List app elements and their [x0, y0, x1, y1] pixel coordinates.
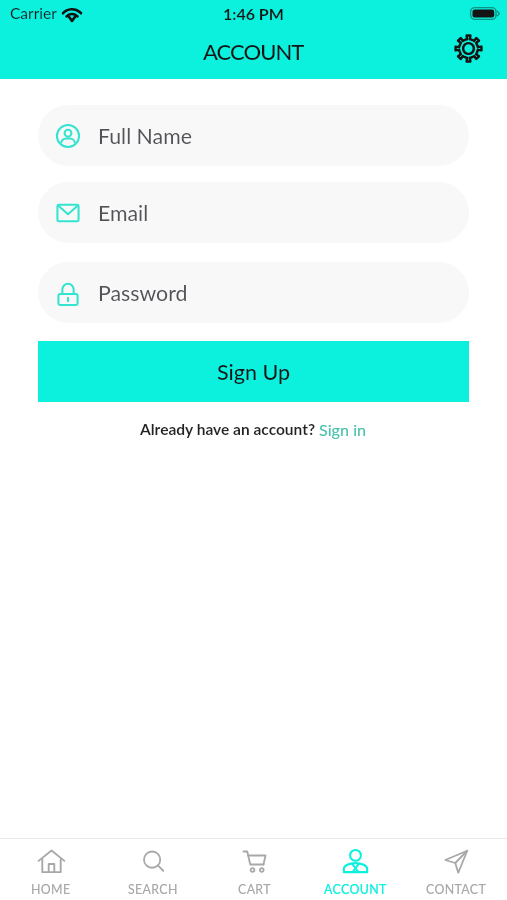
staticText: ACCOUNT [324, 882, 387, 897]
button[interactable]: CART [204, 839, 305, 900]
staticText: Sign in [319, 420, 367, 439]
button[interactable]: Password [38, 262, 469, 323]
button[interactable]: HOME [0, 839, 102, 900]
button[interactable]: Sign in [319, 420, 367, 439]
staticText: SEARCH [128, 882, 178, 897]
staticText: Carrier [10, 4, 57, 23]
button[interactable]: CONTACT [406, 839, 507, 900]
staticText: HOME [31, 882, 71, 897]
staticText: Email [98, 200, 149, 226]
staticText: Password [98, 280, 188, 306]
button[interactable]: ACCOUNT [305, 839, 406, 900]
staticText: CONTACT [426, 882, 487, 897]
button[interactable]: Full Name [38, 105, 469, 166]
button[interactable]: SEARCH [102, 839, 204, 900]
staticText: ACCOUNT [203, 38, 304, 64]
button[interactable]: Sign Up [38, 341, 469, 402]
staticText: Sign Up [217, 359, 291, 385]
staticText: Already have an account? [140, 420, 319, 439]
button[interactable]: Settings [450, 30, 486, 66]
button[interactable]: Email [38, 182, 469, 243]
staticText: CART [238, 882, 271, 897]
staticText: Full Name [98, 123, 192, 149]
staticText: 1:46 PM [223, 4, 284, 23]
